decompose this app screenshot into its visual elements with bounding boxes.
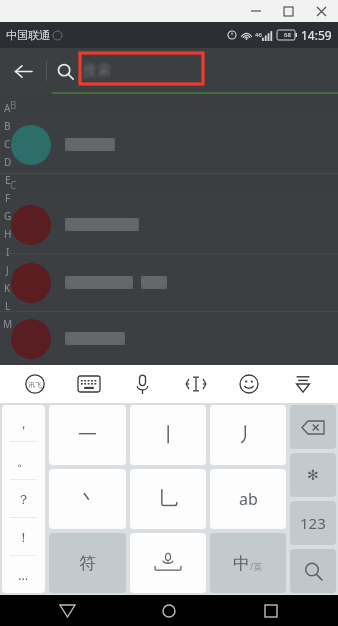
button[interactable]: Home	[134, 595, 204, 626]
staticText: ！	[17, 529, 30, 545]
button[interactable]: …	[2, 556, 45, 593]
staticText: 68	[284, 31, 291, 39]
staticText: F	[5, 191, 11, 205]
button[interactable]: Close	[304, 0, 338, 22]
button[interactable]: ✻	[290, 453, 336, 497]
button[interactable]: Input method logo	[13, 365, 57, 403]
staticText: B	[4, 119, 11, 133]
staticText: G	[4, 209, 12, 223]
button[interactable]: Keyboard layout	[67, 365, 111, 403]
staticText: 讯飞	[28, 380, 42, 389]
button[interactable]: Back	[32, 595, 102, 626]
button[interactable]: E	[0, 171, 15, 189]
button[interactable]: Emoji	[227, 365, 271, 403]
staticText: 乚	[159, 487, 178, 511]
other: Search	[57, 63, 74, 80]
button[interactable]: Search	[290, 549, 336, 593]
button[interactable]: L	[0, 297, 15, 315]
staticText: 。	[17, 453, 30, 469]
staticText: ？	[17, 491, 30, 507]
button[interactable]: M	[0, 315, 15, 333]
button[interactable]: 符	[49, 533, 126, 593]
button[interactable]: Minimize	[240, 0, 272, 22]
staticText: 中国联通	[6, 28, 50, 42]
staticText: 123	[300, 513, 326, 533]
button[interactable]: K	[0, 279, 15, 297]
button[interactable]: F	[0, 189, 15, 207]
staticText: B	[10, 98, 17, 112]
button[interactable]: Recent apps	[236, 595, 306, 626]
button[interactable]: Backspace	[290, 405, 336, 449]
staticText: E	[5, 173, 11, 187]
button[interactable]: 一	[49, 405, 126, 465]
staticText: 一	[78, 423, 97, 447]
staticText: ab	[239, 488, 258, 510]
button[interactable]: C	[0, 135, 15, 153]
button[interactable]	[0, 196, 338, 253]
staticText: ✻	[307, 467, 319, 483]
button[interactable]: D	[0, 153, 15, 171]
button[interactable]: ，	[2, 405, 45, 441]
button[interactable]: ！	[2, 518, 45, 555]
button[interactable]: J	[0, 261, 15, 279]
staticText: 14:59	[301, 27, 332, 43]
staticText: …	[18, 566, 29, 584]
staticText: 符	[79, 553, 96, 574]
staticText: K	[4, 281, 11, 295]
staticText: 46	[255, 31, 262, 39]
staticText: H	[4, 227, 12, 241]
button[interactable]: I	[0, 243, 15, 261]
staticText: 搜索	[83, 62, 111, 80]
button[interactable]: 丶	[49, 469, 126, 529]
staticText: D	[4, 155, 12, 169]
button[interactable]: B	[0, 117, 15, 135]
staticText: I	[6, 245, 10, 259]
staticText: ，	[17, 415, 30, 431]
button[interactable]: 乚	[130, 469, 206, 529]
button[interactable]: Collapse keyboard	[281, 365, 325, 403]
button[interactable]: 123	[290, 501, 336, 545]
staticText: 丨	[159, 423, 178, 447]
button[interactable]: Cursor control	[174, 365, 218, 403]
staticText: /英	[250, 560, 263, 572]
button[interactable]: Back	[0, 48, 46, 94]
button[interactable]: 中	[210, 533, 286, 593]
button[interactable]	[0, 254, 338, 311]
button[interactable]: A	[0, 99, 15, 117]
staticText: C	[4, 137, 11, 151]
button[interactable]: 丿	[210, 405, 286, 465]
staticText: M	[3, 317, 13, 331]
button[interactable]	[0, 116, 338, 173]
button[interactable]: G	[0, 207, 15, 225]
staticText: 中	[233, 553, 250, 574]
staticText: 丶	[78, 487, 97, 511]
staticText: J	[6, 263, 9, 277]
button[interactable]: 搜索	[83, 48, 338, 94]
button[interactable]: Space	[130, 533, 206, 593]
staticText: 丿	[239, 423, 258, 447]
staticText: C	[10, 178, 17, 192]
staticText: A	[4, 101, 11, 115]
button[interactable]: 。	[2, 442, 45, 479]
button[interactable]	[0, 312, 338, 365]
button[interactable]: Maximize	[272, 0, 304, 22]
button[interactable]: ab	[210, 469, 286, 529]
button[interactable]: 丨	[130, 405, 206, 465]
button[interactable]: Voice input	[120, 365, 164, 403]
staticText: L	[5, 299, 11, 313]
button[interactable]: H	[0, 225, 15, 243]
button[interactable]: ？	[2, 480, 45, 517]
